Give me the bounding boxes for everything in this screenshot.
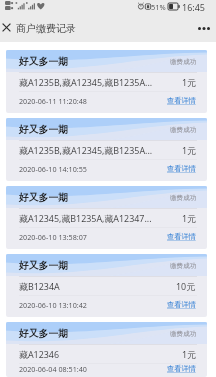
button[interactable]: 查看详情 <box>167 164 196 173</box>
staticText: 好又多一期 <box>19 124 68 136</box>
staticText: 2020-06-11 11:20:48 <box>19 96 87 106</box>
staticText: 商户缴费记录 <box>16 22 76 35</box>
staticText: 16:45 <box>182 1 206 13</box>
staticText: 2020-06-10 14:10:55 <box>19 164 87 174</box>
staticText: 查看详情 <box>167 300 196 309</box>
staticText: 2020-06-10 13:10:42 <box>19 300 87 310</box>
button[interactable]: 查看详情 <box>167 364 196 373</box>
staticText: 2020-06-10 13:58:07 <box>19 232 87 242</box>
staticText: 好又多一期 <box>19 328 68 340</box>
staticText: 缴费成功 <box>170 330 197 338</box>
button[interactable]: Close <box>0 18 14 37</box>
staticText: 缴费成功 <box>170 58 197 66</box>
staticText: 藏A1235B,藏A12345,藏B1235A... <box>19 76 153 88</box>
staticText: 1元 <box>182 144 196 156</box>
staticText: 查看详情 <box>167 232 196 241</box>
staticText: 藏A1235B,藏A12345,藏B1235A... <box>19 144 153 156</box>
button[interactable]: 好又多一期 <box>6 118 207 181</box>
button[interactable]: 好又多一期 <box>6 322 207 377</box>
staticText: 藏B1234A <box>19 280 60 292</box>
staticText: 10元 <box>176 280 196 292</box>
staticText: 1元 <box>182 212 196 224</box>
button[interactable]: 查看详情 <box>167 300 196 309</box>
button[interactable]: 好又多一期 <box>6 186 207 249</box>
staticText: 51% <box>151 2 166 12</box>
staticText: 1元 <box>182 76 196 88</box>
staticText: 查看详情 <box>167 364 196 373</box>
staticText: 缴费成功 <box>170 194 197 202</box>
staticText: 好又多一期 <box>19 260 68 272</box>
staticText: 好又多一期 <box>19 56 68 68</box>
staticText: 藏A12345,藏B1235A,藏A12347... <box>19 212 152 224</box>
button[interactable]: 查看详情 <box>167 232 196 241</box>
staticText: 查看详情 <box>167 164 196 173</box>
staticText: 缴费成功 <box>170 262 197 270</box>
staticText: 藏A12346 <box>19 348 59 360</box>
button[interactable]: 查看详情 <box>167 96 196 105</box>
staticText: 查看详情 <box>167 96 196 105</box>
staticText: 1元 <box>182 348 196 360</box>
button[interactable]: 好又多一期 <box>6 50 207 113</box>
button[interactable]: 好又多一期 <box>6 254 207 317</box>
staticText: 缴费成功 <box>170 126 197 134</box>
staticText: 2020-06-04 08:51:40 <box>19 364 87 374</box>
button[interactable]: More options <box>194 18 214 38</box>
staticText: 好又多一期 <box>19 192 68 204</box>
